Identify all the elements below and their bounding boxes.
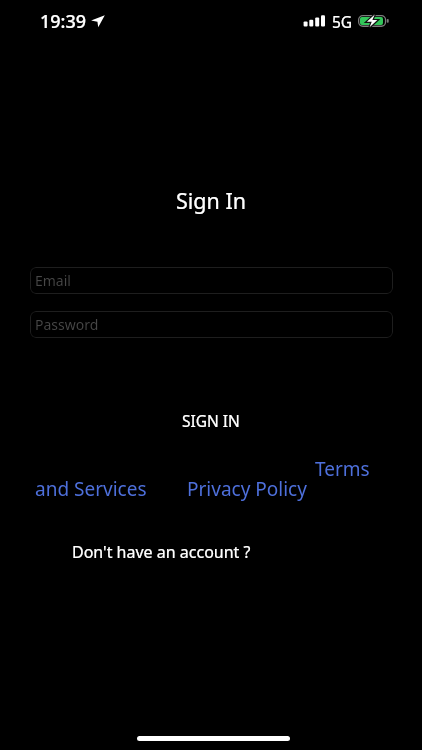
other: Location xyxy=(90,14,106,28)
button[interactable]: Terms xyxy=(315,456,370,482)
button[interactable]: SIGN IN xyxy=(0,406,422,434)
staticText: Password xyxy=(35,315,99,334)
staticText: Email xyxy=(35,271,71,290)
staticText: 5G xyxy=(332,11,353,32)
staticText: Privacy Policy xyxy=(187,476,307,502)
staticText: Don't have an account ? xyxy=(72,541,251,563)
button[interactable]: Email xyxy=(30,267,393,294)
button[interactable]: and Services xyxy=(35,476,147,502)
button[interactable]: Password xyxy=(30,311,393,338)
staticText: Terms xyxy=(315,456,370,482)
staticText: Sign In xyxy=(0,186,422,215)
staticText: 19:39 xyxy=(40,9,87,34)
button[interactable]: Privacy Policy xyxy=(187,476,307,502)
button[interactable]: Don't have an account ? xyxy=(72,541,251,563)
staticText: SIGN IN xyxy=(182,410,240,431)
staticText: and Services xyxy=(35,476,147,502)
